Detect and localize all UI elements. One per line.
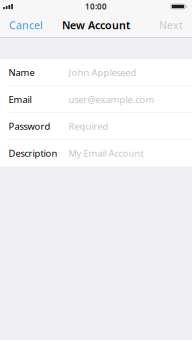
staticText: My Email Account — [68, 147, 143, 159]
staticText: John Appleseed — [68, 66, 136, 78]
button[interactable]: Cancel — [0, 13, 50, 37]
staticText: user@example.com — [68, 93, 154, 105]
staticText: New Account — [62, 18, 130, 32]
button[interactable]: Description — [0, 140, 192, 166]
button[interactable]: Next — [152, 13, 192, 37]
staticText: Cancel — [9, 18, 43, 32]
staticText: Email — [8, 93, 31, 105]
staticText: Required — [68, 120, 108, 132]
button[interactable]: Password — [0, 113, 192, 139]
button[interactable]: Name — [0, 59, 192, 85]
staticText: Next — [159, 18, 183, 32]
button[interactable]: Email — [0, 86, 192, 112]
staticText: 10:00 — [85, 1, 107, 12]
staticText: Description — [8, 147, 57, 159]
staticText: Name — [8, 66, 34, 78]
staticText: Password — [8, 120, 50, 132]
